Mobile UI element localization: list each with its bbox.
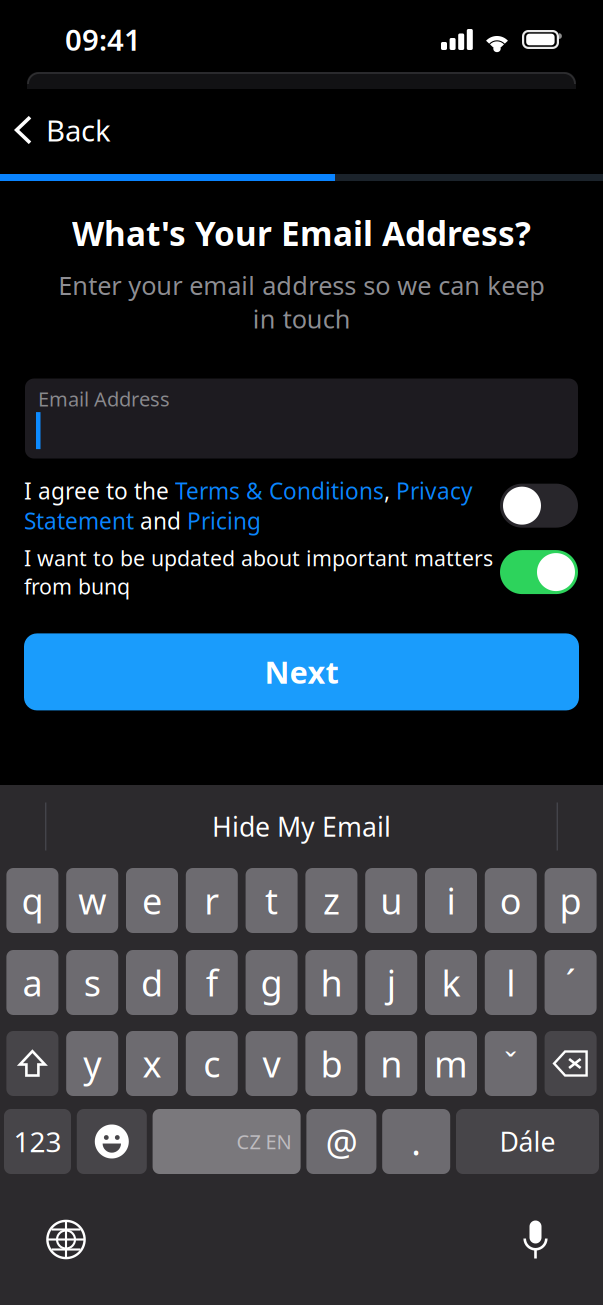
button[interactable]: Dále <box>456 1109 599 1174</box>
button[interactable]: Delete <box>545 1031 597 1096</box>
staticText: r <box>204 877 219 924</box>
button[interactable]: d <box>126 950 178 1015</box>
staticText: I agree to the Terms & Conditions, Priva… <box>24 475 473 536</box>
staticText: ˇ <box>504 1043 517 1084</box>
button[interactable]: p <box>545 868 597 933</box>
staticText: Email Address <box>38 385 170 412</box>
staticText: Hide My Email <box>212 809 391 844</box>
staticText: n <box>380 1040 402 1087</box>
staticText: f <box>206 959 218 1006</box>
staticText: k <box>441 959 460 1006</box>
button[interactable]: n <box>365 1031 417 1096</box>
button[interactable]: Back <box>0 86 603 174</box>
button[interactable]: Off <box>500 484 578 528</box>
button[interactable]: h <box>305 950 357 1015</box>
button[interactable]: l <box>485 950 537 1015</box>
staticText: a <box>22 959 42 1006</box>
staticText: 09:41 <box>65 20 141 59</box>
button[interactable]: m <box>425 1031 477 1096</box>
staticText: . <box>411 1118 421 1165</box>
staticText: v <box>263 1040 281 1087</box>
button[interactable]: o <box>485 868 537 933</box>
button[interactable]: y <box>66 1031 118 1096</box>
button[interactable]: a <box>6 950 58 1015</box>
staticText: o <box>500 877 522 924</box>
button[interactable]: r <box>186 868 238 933</box>
staticText: g <box>261 959 283 1006</box>
staticText: l <box>506 959 515 1006</box>
button[interactable]: 123 <box>4 1109 71 1174</box>
staticText: Next <box>264 651 338 692</box>
staticText: ´ <box>566 959 576 1006</box>
staticText: CZ EN <box>237 1128 292 1155</box>
button[interactable]: f <box>186 950 238 1015</box>
button[interactable]: c <box>186 1031 238 1096</box>
button[interactable]: ´ <box>545 950 597 1015</box>
staticText: Dále <box>499 1124 555 1159</box>
staticText: q <box>21 877 43 924</box>
button[interactable]: j <box>365 950 417 1015</box>
staticText: u <box>380 877 402 924</box>
button[interactable]: Next <box>24 633 579 710</box>
button[interactable]: s <box>66 950 118 1015</box>
staticText: j <box>387 959 396 1006</box>
button[interactable]: e <box>126 868 178 933</box>
staticText: c <box>203 1040 220 1087</box>
staticText: h <box>320 959 342 1006</box>
button[interactable]: w <box>66 868 118 933</box>
staticText: w <box>78 877 106 924</box>
staticText: i <box>446 877 455 924</box>
button[interactable]: k <box>425 950 477 1015</box>
staticText: I want to be updated about important mat… <box>24 544 493 600</box>
button[interactable]: Space <box>153 1109 301 1174</box>
staticText: 123 <box>13 1123 61 1160</box>
button[interactable]: Change keyboard <box>46 1219 86 1259</box>
button[interactable]: g <box>246 950 298 1015</box>
staticText: Back <box>46 110 111 149</box>
button[interactable]: Emoji <box>77 1109 147 1174</box>
button[interactable]: Dictate <box>520 1219 551 1259</box>
button[interactable]: b <box>305 1031 357 1096</box>
staticText: x <box>142 1040 161 1087</box>
button[interactable]: i <box>425 868 477 933</box>
button[interactable]: @ <box>306 1109 376 1174</box>
button[interactable]: On <box>500 550 578 594</box>
staticText: Enter your email address so we can keep … <box>58 268 545 336</box>
button[interactable]: q <box>6 868 58 933</box>
staticText: e <box>142 877 162 924</box>
staticText: b <box>320 1040 342 1087</box>
button[interactable]: u <box>365 868 417 933</box>
button[interactable]: . <box>382 1109 450 1174</box>
button[interactable]: Shift <box>6 1031 58 1096</box>
staticText: @ <box>325 1118 357 1165</box>
staticText: t <box>265 877 278 924</box>
staticText: d <box>141 959 163 1006</box>
staticText: What's Your Email Address? <box>72 211 531 255</box>
button[interactable]: z <box>305 868 357 933</box>
staticText: m <box>434 1040 468 1087</box>
staticText: s <box>84 959 101 1006</box>
button[interactable]: t <box>246 868 298 933</box>
button[interactable]: v <box>246 1031 298 1096</box>
button[interactable]: ˇ <box>485 1031 537 1096</box>
staticText: p <box>560 877 582 924</box>
staticText: z <box>323 877 340 924</box>
button[interactable]: x <box>126 1031 178 1096</box>
staticText: y <box>83 1040 101 1087</box>
